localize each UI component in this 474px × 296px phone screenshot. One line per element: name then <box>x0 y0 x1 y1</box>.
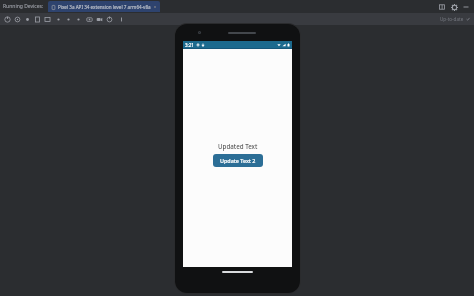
staticText: 3:21 <box>185 42 194 48</box>
button[interactable]: Home <box>63 14 73 24</box>
button[interactable]: Split window <box>438 3 446 11</box>
button[interactable]: Overview <box>73 14 83 24</box>
button[interactable]: Record screen <box>94 14 104 24</box>
button[interactable]: Home gesture <box>222 271 253 273</box>
button[interactable]: Back <box>53 14 63 24</box>
staticText: Running Devices: <box>3 3 44 10</box>
staticText: Update Text 2 <box>220 157 256 164</box>
button[interactable]: Rotate right <box>42 14 52 24</box>
button[interactable]: Update Text 2 <box>213 154 263 167</box>
button[interactable]: Screenshot <box>84 14 94 24</box>
button[interactable]: Rotate left <box>32 14 42 24</box>
staticText: Up-to-date <box>440 16 464 22</box>
staticText: Pixel 3a API 34 extension level 7 arm64-… <box>58 4 151 10</box>
button[interactable]: Volume down <box>22 14 32 24</box>
staticText: Updated Text <box>218 142 258 150</box>
button[interactable]: Reset <box>104 14 114 24</box>
button[interactable]: More <box>116 14 126 24</box>
button[interactable]: Pixel 3a API 34 extension level 7 arm64-… <box>48 1 160 12</box>
button[interactable]: Power <box>2 14 12 24</box>
button[interactable]: Settings <box>450 3 458 11</box>
button[interactable]: Hide <box>462 3 470 11</box>
button[interactable]: Volume up <box>12 14 22 24</box>
